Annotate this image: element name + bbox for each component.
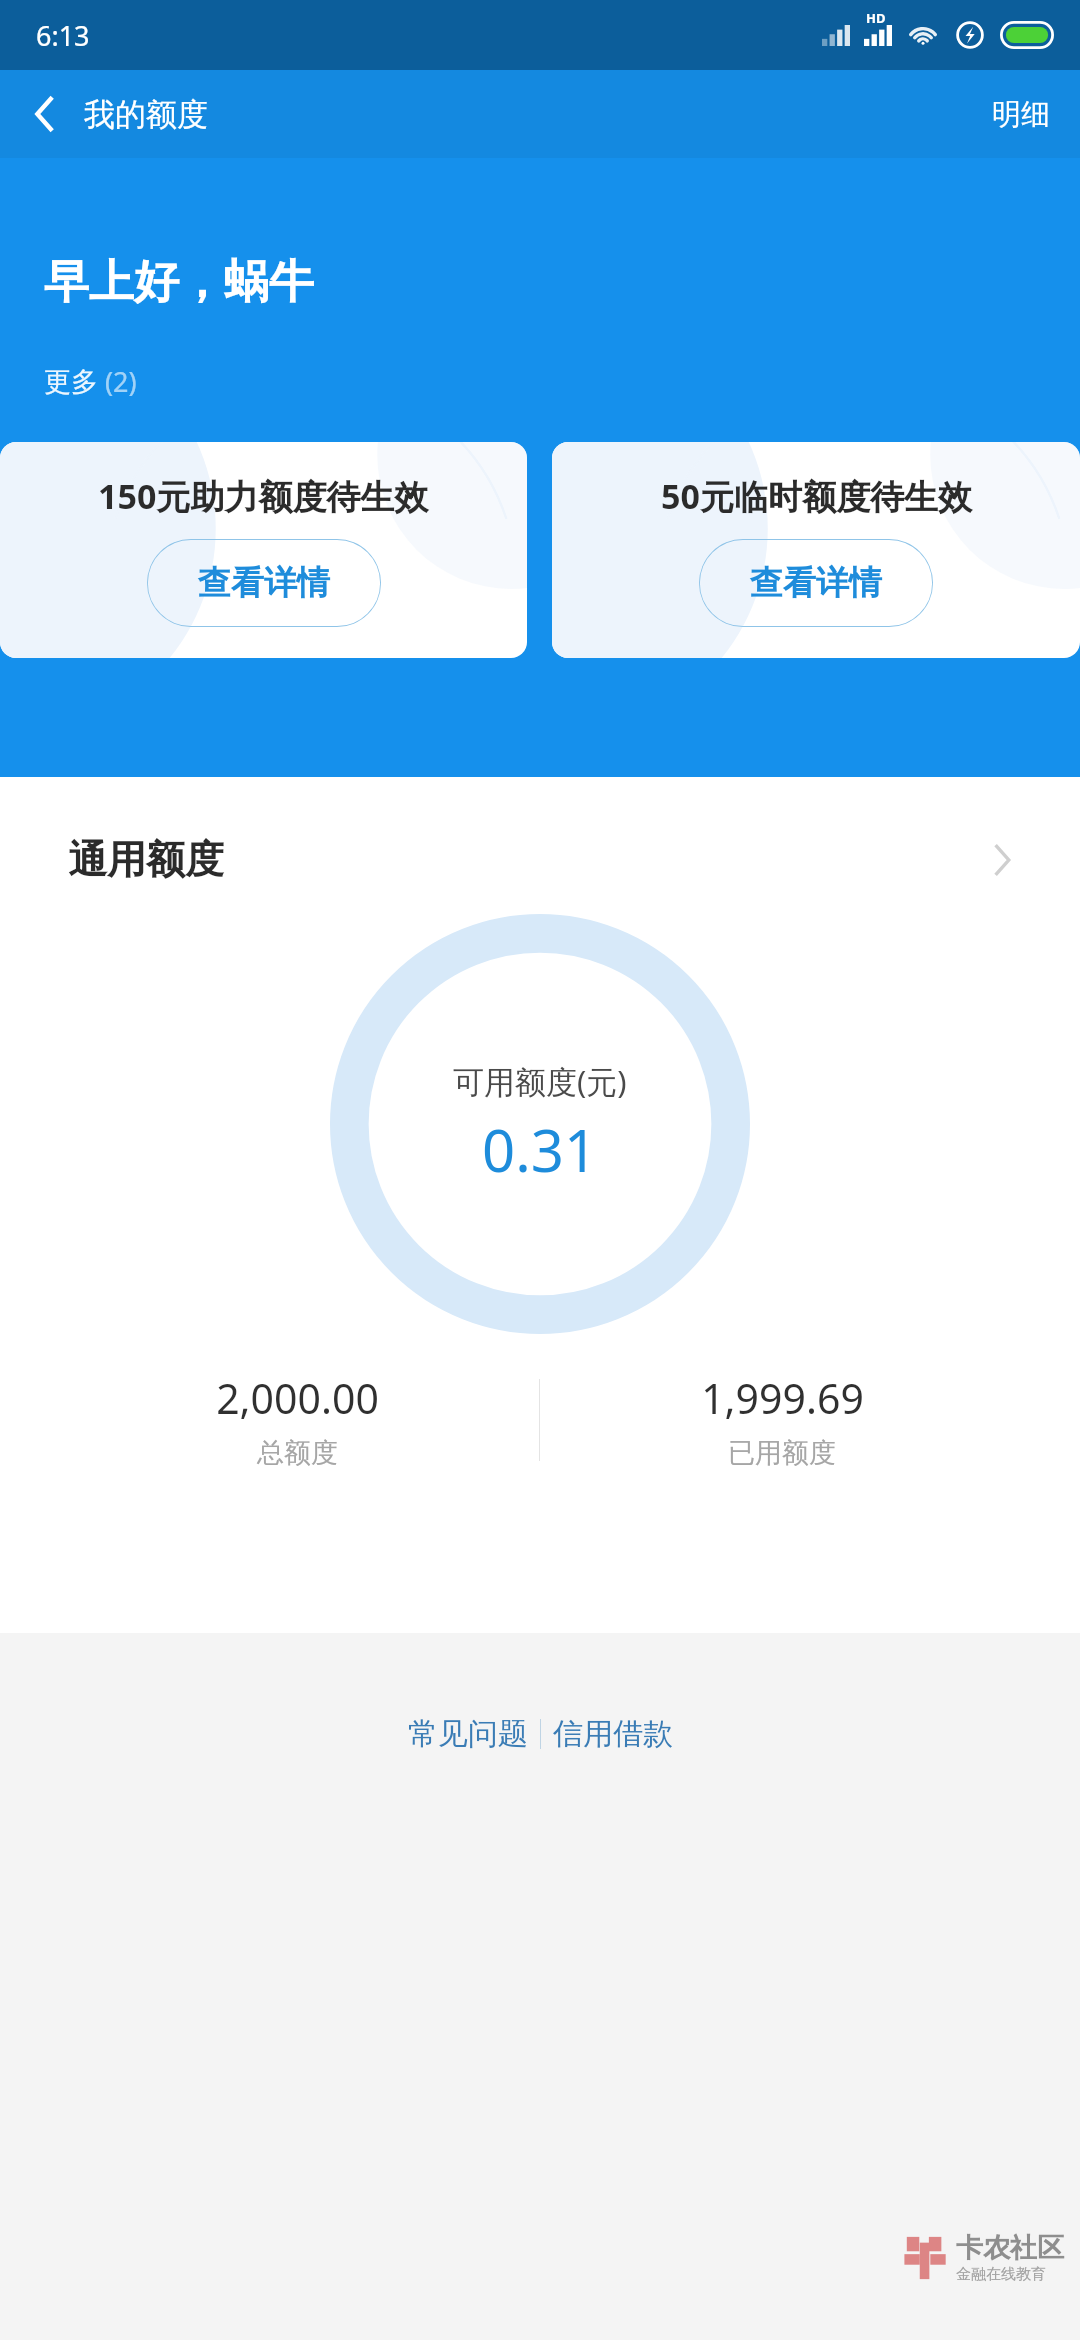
button[interactable]: 查看详情: [147, 539, 381, 627]
button[interactable]: 150元助力额度待生效: [0, 442, 527, 658]
staticText: 信用借款: [553, 1715, 673, 1753]
button[interactable]: 更多: [44, 363, 137, 400]
staticText: HD: [866, 9, 886, 27]
staticText: 更多: [44, 365, 98, 399]
staticText: 金融在线教育: [956, 2265, 1046, 2284]
staticText: 6:13: [36, 17, 90, 54]
button[interactable]: 返回: [12, 81, 78, 147]
button[interactable]: 50元临时额度待生效: [552, 442, 1080, 658]
staticText: 通用额度: [68, 835, 224, 884]
staticText: 明细: [992, 96, 1050, 133]
staticText: 查看详情: [198, 562, 330, 604]
staticText: 1,999.69: [701, 1370, 864, 1426]
staticText: 查看详情: [750, 562, 882, 604]
button[interactable]: 信用借款: [541, 1705, 685, 1763]
staticText: 我的额度: [84, 95, 208, 134]
staticText: 2,000.00: [216, 1370, 379, 1426]
button[interactable]: 常见问题: [396, 1705, 540, 1763]
button[interactable]: 通用额度: [0, 835, 1080, 884]
staticText: 卡农社区: [956, 2231, 1064, 2265]
staticText: 可用额度(元): [453, 1060, 627, 1102]
button[interactable]: 查看详情: [699, 539, 933, 627]
staticText: 常见问题: [408, 1715, 528, 1753]
staticText: 150元助力额度待生效: [98, 473, 429, 519]
staticText: 50元临时额度待生效: [661, 473, 972, 519]
staticText: 已用额度: [728, 1436, 836, 1470]
staticText: 早上好，蜗牛: [44, 254, 314, 311]
staticText: 总额度: [257, 1436, 338, 1470]
button[interactable]: 明细: [962, 80, 1080, 149]
staticText: (2): [98, 363, 137, 400]
staticText: 0.31: [482, 1110, 598, 1189]
